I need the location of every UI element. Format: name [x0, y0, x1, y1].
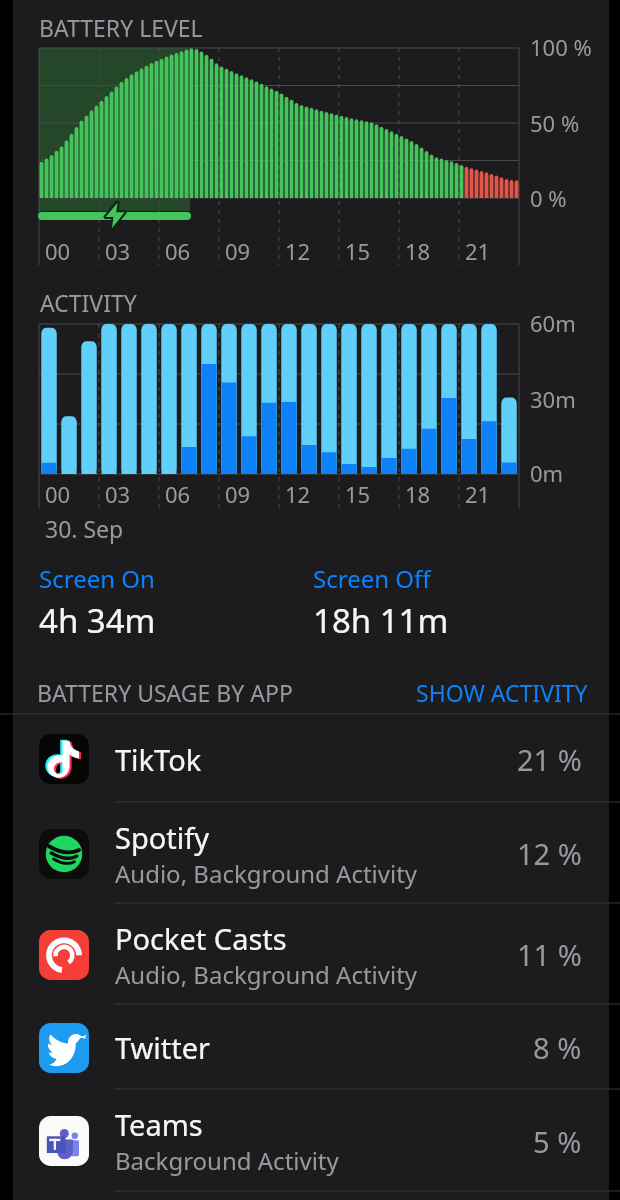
staticText: 15	[345, 236, 371, 266]
staticText: 06	[165, 479, 191, 509]
staticText: BATTERY LEVEL	[39, 12, 203, 43]
button[interactable]: Twitter	[13, 1005, 609, 1090]
button[interactable]: Spotify	[13, 803, 609, 904]
staticText: Background Activity	[115, 1144, 339, 1177]
staticText: 06	[165, 236, 191, 266]
staticText: BATTERY USAGE BY APP	[37, 677, 293, 708]
staticText: 50 %	[530, 108, 580, 138]
staticText: 30m	[530, 384, 576, 414]
staticText: 00	[45, 479, 71, 509]
staticText: TikTok	[115, 740, 202, 779]
staticText: 21	[465, 236, 491, 266]
staticText: SHOW ACTIVITY	[416, 677, 588, 708]
button[interactable]: SHOW ACTIVITY	[404, 667, 600, 718]
staticText: 09	[225, 236, 251, 266]
staticText: 60m	[530, 308, 576, 338]
staticText: 5 %	[533, 1122, 582, 1161]
staticText: 00	[45, 236, 71, 266]
staticText: ACTIVITY	[40, 287, 137, 318]
staticText: 0 %	[530, 183, 567, 213]
staticText: 18	[405, 479, 431, 509]
staticText: 03	[105, 236, 131, 266]
staticText: Screen Off	[313, 562, 431, 595]
staticText: Audio, Background Activity	[115, 857, 418, 890]
staticText: 18	[405, 236, 431, 266]
button[interactable]: Teams	[13, 1090, 609, 1192]
staticText: Pocket Casts	[115, 919, 287, 958]
button[interactable]: Pocket Casts	[13, 904, 609, 1005]
staticText: Twitter	[115, 1028, 211, 1067]
staticText: 15	[345, 479, 371, 509]
staticText: Screen On	[39, 562, 155, 595]
staticText: 09	[225, 479, 251, 509]
staticText: 4h 34m	[39, 598, 156, 643]
staticText: 0m	[530, 458, 564, 488]
staticText: 8 %	[533, 1028, 582, 1067]
staticText: 03	[105, 479, 131, 509]
staticText: Spotify	[115, 818, 210, 857]
staticText: 12	[285, 479, 311, 509]
staticText: Teams	[115, 1105, 203, 1144]
staticText: 100 %	[530, 32, 592, 62]
staticText: 11 %	[517, 935, 582, 974]
staticText: 12 %	[517, 834, 582, 873]
staticText: Audio, Background Activity	[115, 958, 418, 991]
button[interactable]: TikTok	[13, 715, 609, 803]
staticText: 30. Sep	[45, 513, 124, 544]
staticText: 21	[465, 479, 491, 509]
staticText: 12	[285, 236, 311, 266]
staticText: 21 %	[517, 740, 582, 779]
staticText: 18h 11m	[313, 598, 449, 643]
